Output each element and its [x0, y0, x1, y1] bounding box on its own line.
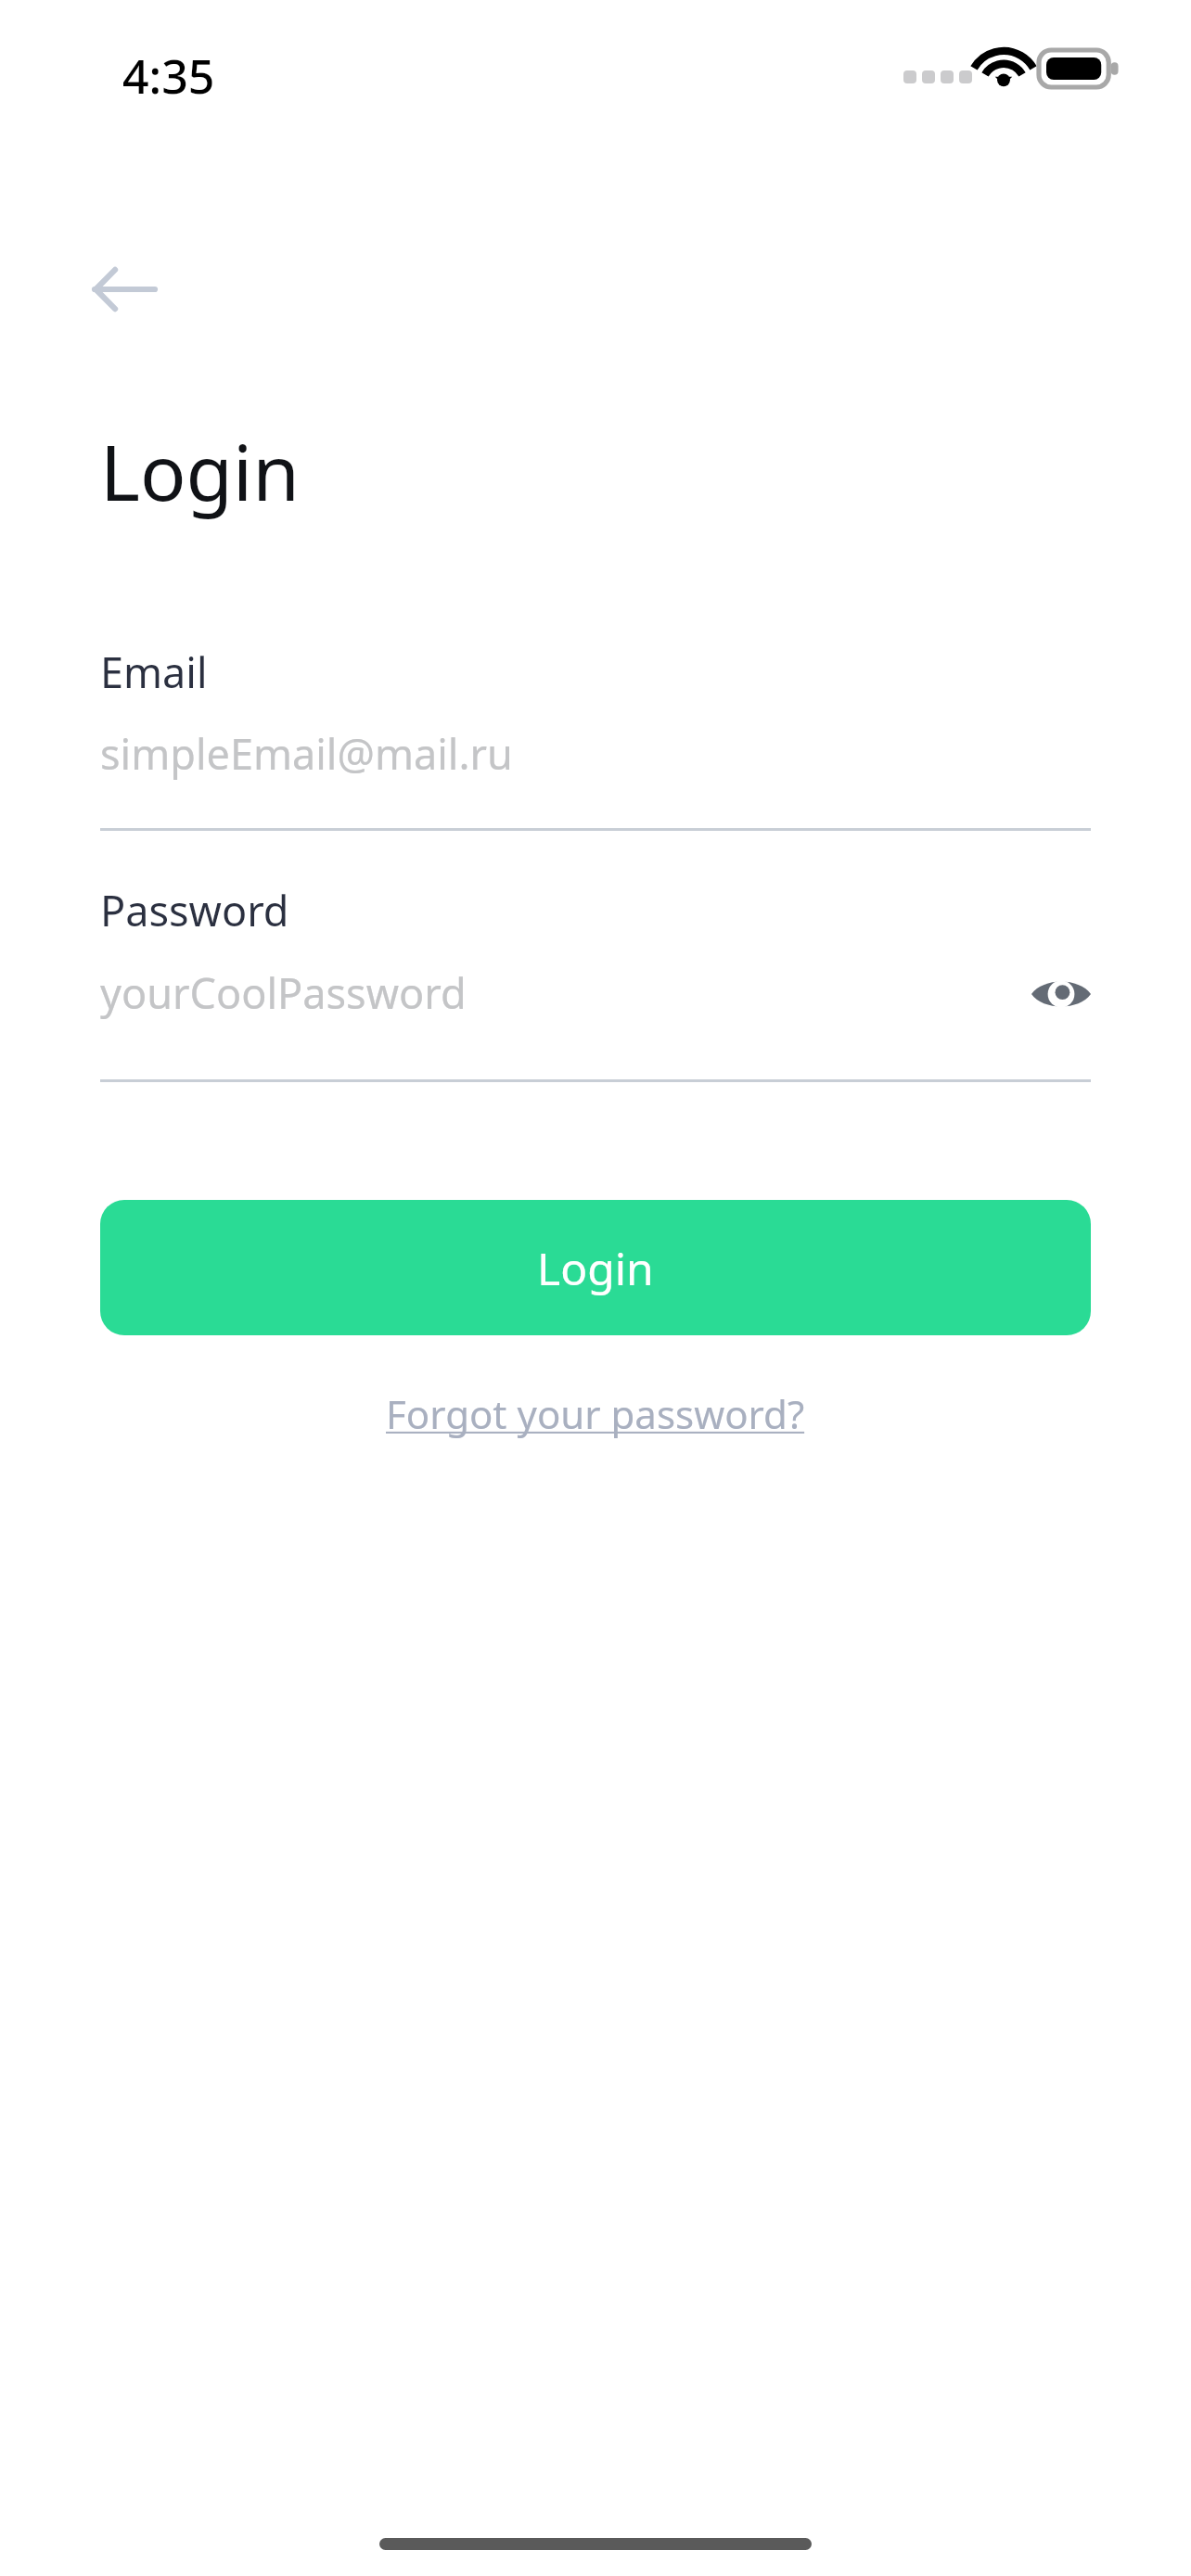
staticText: Password [100, 882, 289, 938]
button[interactable]: simpleEmail@mail.ru [100, 716, 1091, 831]
staticText: Email [100, 644, 208, 700]
button[interactable]: yourCoolPassword [100, 955, 991, 1066]
staticText: Forgot your password? [386, 1387, 805, 1440]
staticText: yourCoolPassword [100, 964, 467, 1021]
staticText: 4:35 [122, 45, 215, 108]
staticText: Login [100, 419, 300, 523]
button[interactable]: Show password [1009, 942, 1113, 1046]
staticText: simpleEmail@mail.ru [100, 725, 513, 782]
button[interactable]: Back [72, 237, 176, 341]
staticText: Login [537, 1238, 654, 1298]
button[interactable]: Login [100, 1200, 1091, 1335]
button[interactable]: Forgot your password? [378, 1382, 813, 1446]
